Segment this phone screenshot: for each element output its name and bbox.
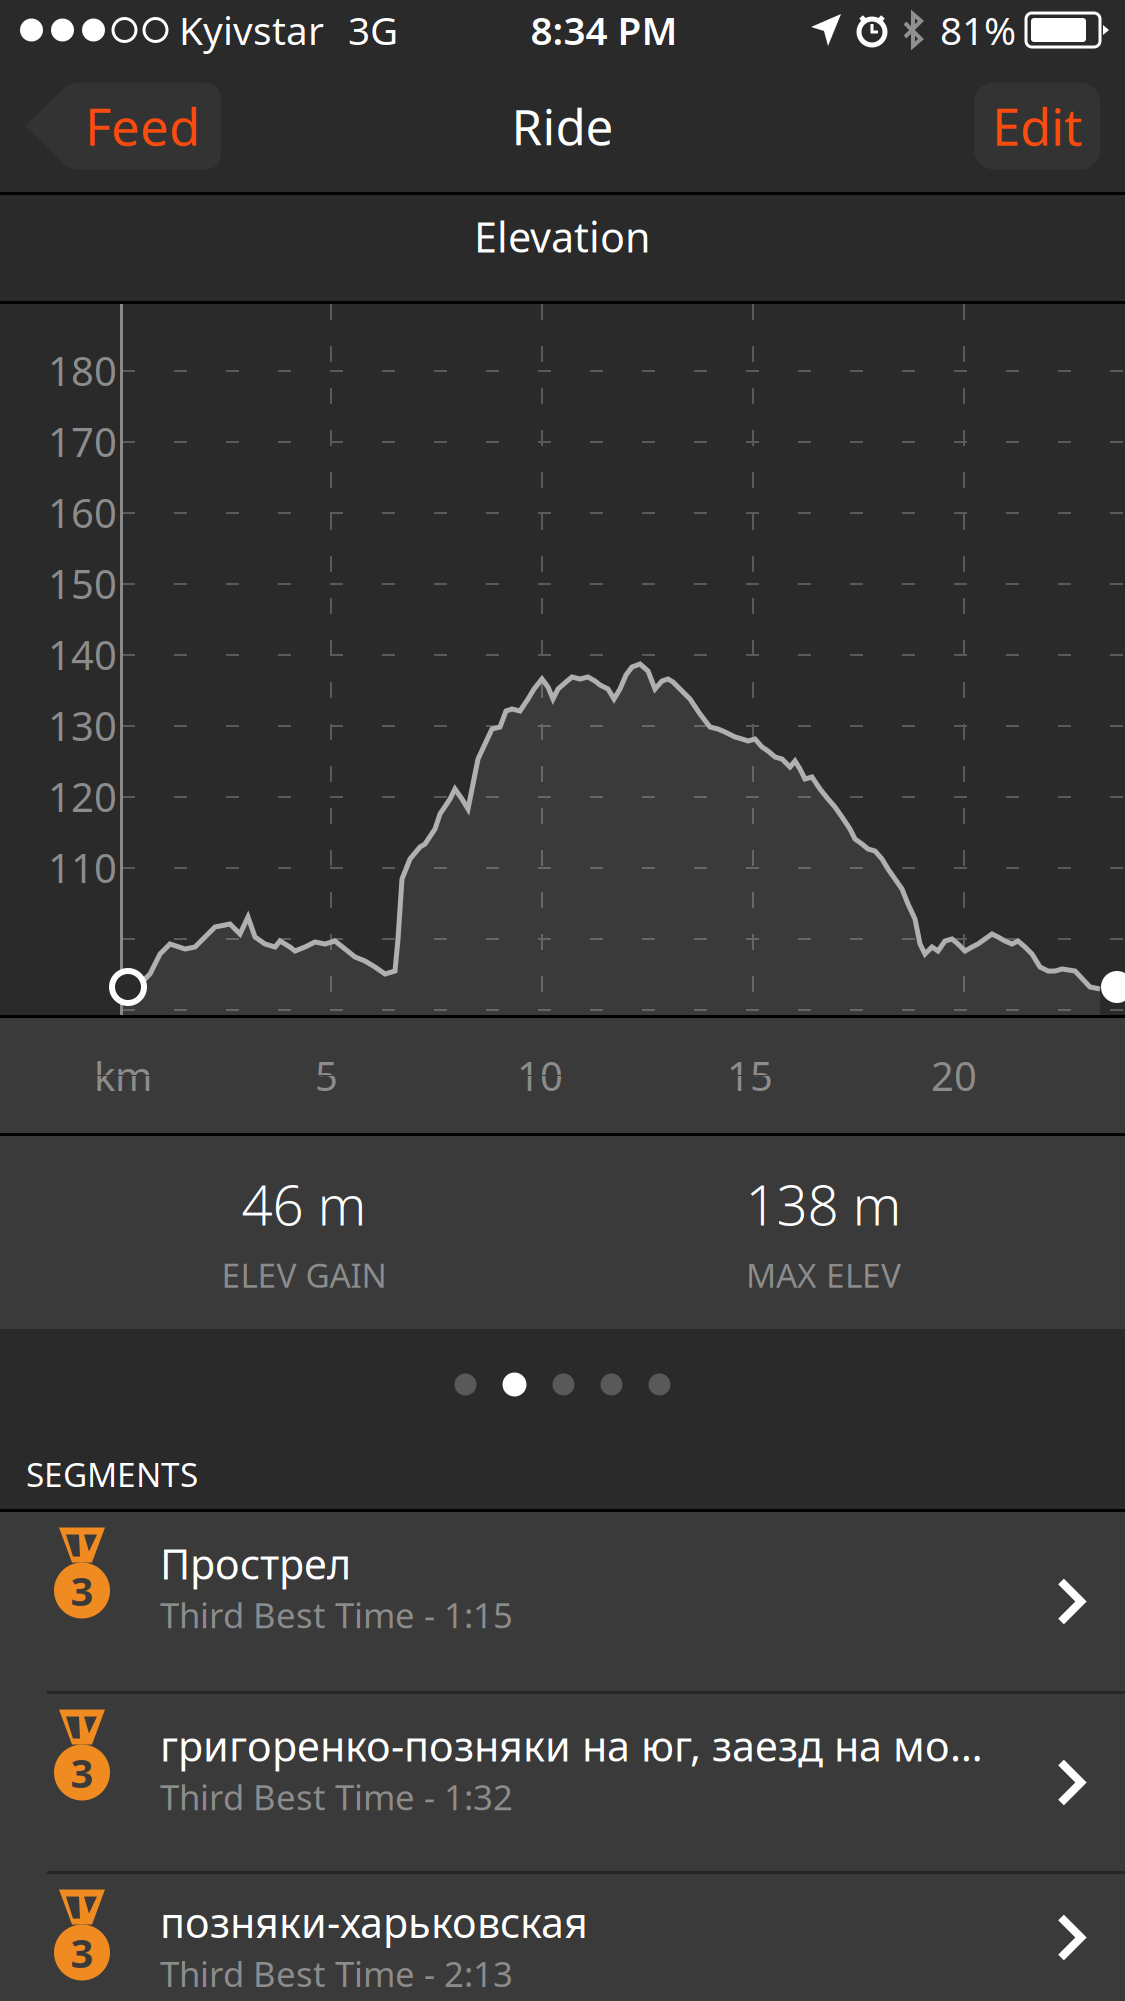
button[interactable]: 3 bbox=[0, 1694, 1125, 1871]
staticText: 138 m bbox=[745, 1168, 901, 1241]
staticText: 120 bbox=[48, 770, 117, 823]
staticText: 180 bbox=[48, 344, 117, 397]
staticText: 46 m bbox=[241, 1168, 366, 1241]
staticText: MAX ELEV bbox=[746, 1253, 901, 1297]
staticText: Third Best Time - 2:13 bbox=[160, 1950, 513, 1996]
staticText: Ride bbox=[511, 93, 613, 159]
staticText: 110 bbox=[48, 841, 117, 894]
staticText: 150 bbox=[48, 557, 117, 610]
staticText: 3G bbox=[348, 4, 398, 56]
staticText: 3 bbox=[70, 1564, 93, 1617]
staticText: 8:34 PM bbox=[530, 4, 677, 56]
staticText: 130 bbox=[48, 699, 117, 752]
staticText: 3 bbox=[70, 1746, 93, 1799]
staticText: 5 bbox=[315, 1049, 338, 1102]
staticText: 81% bbox=[940, 4, 1016, 56]
staticText: Edit bbox=[992, 92, 1082, 160]
staticText: Third Best Time - 1:15 bbox=[160, 1592, 513, 1638]
button[interactable]: Feed bbox=[25, 82, 221, 169]
staticText: Elevation bbox=[474, 209, 651, 264]
staticText: Прострел bbox=[160, 1536, 351, 1591]
staticText: Kyivstar bbox=[179, 4, 324, 56]
staticText: 10 bbox=[517, 1049, 563, 1102]
staticText: 170 bbox=[48, 415, 117, 468]
button[interactable]: 3 bbox=[0, 1874, 1125, 2001]
staticText: SEGMENTS bbox=[26, 1452, 198, 1496]
button[interactable]: 3 bbox=[0, 1512, 1125, 1691]
staticText: 140 bbox=[48, 628, 117, 681]
staticText: позняки-харьковская bbox=[160, 1894, 588, 1949]
staticText: km bbox=[94, 1049, 152, 1102]
button[interactable]: Edit bbox=[974, 82, 1100, 169]
staticText: 160 bbox=[48, 486, 117, 539]
staticText: 20 bbox=[931, 1049, 977, 1102]
staticText: Third Best Time - 1:32 bbox=[160, 1774, 513, 1820]
staticText: Feed bbox=[85, 92, 200, 160]
staticText: 15 bbox=[727, 1049, 773, 1102]
staticText: григоренко-позняки на юг, заезд на мост bbox=[160, 1718, 983, 1773]
staticText: 3 bbox=[70, 1926, 93, 1979]
staticText: ELEV GAIN bbox=[221, 1253, 386, 1297]
